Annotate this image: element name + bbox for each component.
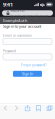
staticText: Sign In xyxy=(22,71,33,76)
staticText: secure-login.example.com xyxy=(10,7,48,19)
staticText: Sign in to your account xyxy=(3,24,41,29)
button[interactable]: Bookmarks xyxy=(33,105,44,111)
button[interactable]: Share xyxy=(22,105,33,111)
staticText: Forgot password? xyxy=(21,63,46,67)
button[interactable]: Forward xyxy=(11,105,22,111)
staticText: Password xyxy=(3,49,16,53)
button[interactable]: Tabs xyxy=(44,105,55,111)
button[interactable]: Forgot password? xyxy=(21,64,46,66)
staticText: ExampleAuth xyxy=(3,18,27,23)
button[interactable]: Sign In xyxy=(13,71,42,77)
staticText: Email or username xyxy=(3,33,32,38)
staticText: 9:41 xyxy=(3,1,13,8)
button[interactable]: Back xyxy=(0,105,11,111)
button[interactable]: Address xyxy=(2,10,53,16)
